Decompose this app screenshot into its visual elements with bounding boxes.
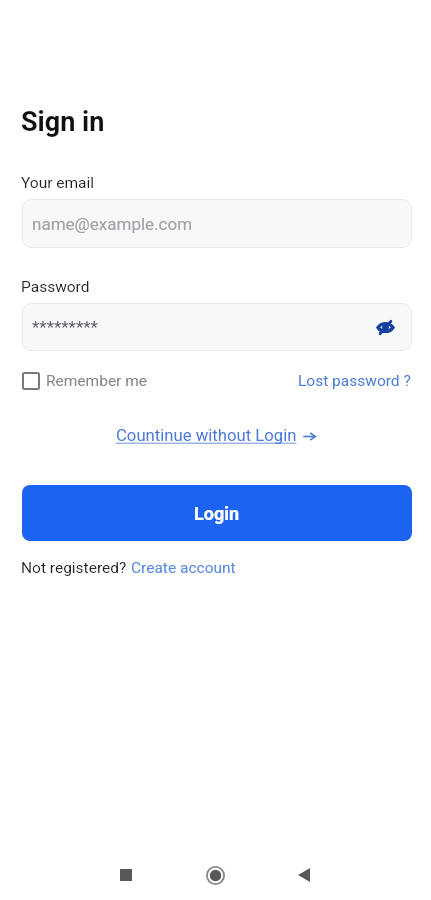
staticText: Password xyxy=(21,278,90,296)
staticText: name@example.com xyxy=(32,214,193,234)
button[interactable]: Create account xyxy=(131,559,236,577)
button[interactable]: name@example.com xyxy=(22,199,412,248)
button[interactable]: ********* xyxy=(22,303,412,351)
button[interactable]: Lost password ? xyxy=(298,372,411,390)
staticText: Your email xyxy=(21,174,95,192)
button[interactable]: Remember me xyxy=(22,372,148,390)
button[interactable]: Back xyxy=(280,851,328,899)
staticText: ********* xyxy=(32,317,98,337)
button[interactable]: Home xyxy=(191,851,239,899)
staticText: Sign in xyxy=(21,106,105,138)
button[interactable]: Countinue without Login xyxy=(116,426,316,446)
staticText: Login xyxy=(194,503,240,524)
button[interactable]: Login xyxy=(22,485,412,541)
staticText: Countinue without Login xyxy=(116,426,297,446)
button[interactable]: Show password xyxy=(372,314,398,340)
staticText: Remember me xyxy=(46,372,148,390)
button[interactable]: Recent apps xyxy=(102,851,150,899)
staticText: Not registered? xyxy=(21,559,131,577)
